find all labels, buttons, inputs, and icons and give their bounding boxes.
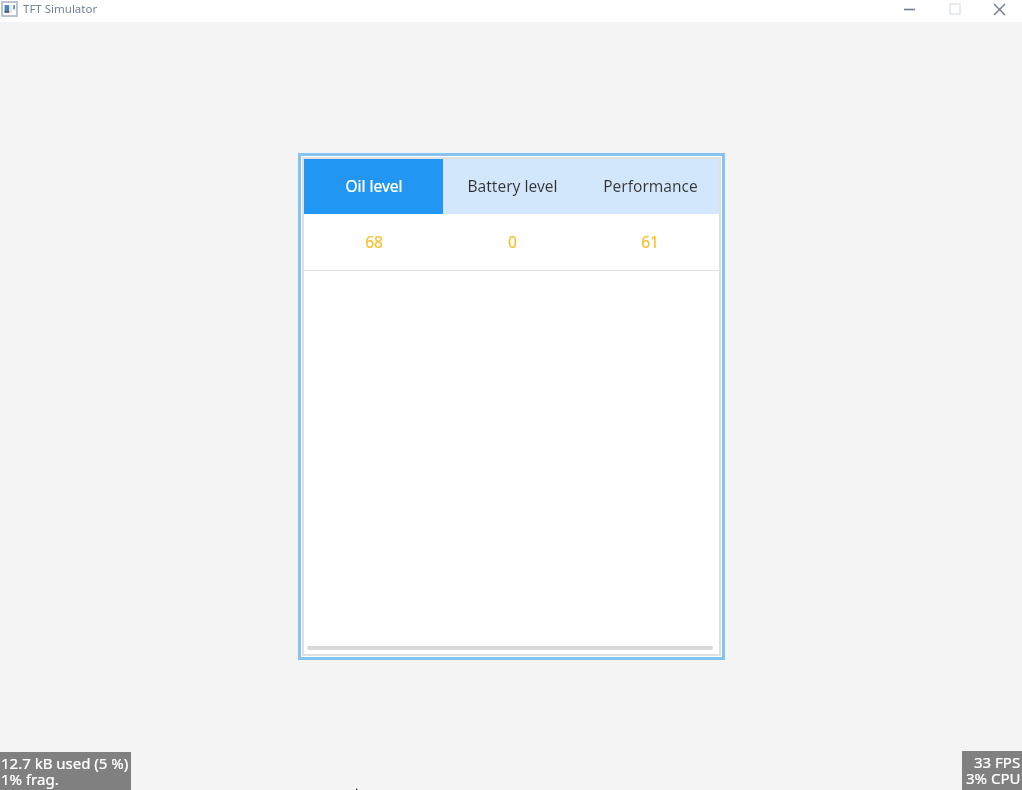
- staticText: Battery level: [467, 175, 558, 196]
- button[interactable]: Maximize: [932, 0, 977, 20]
- staticText: 68: [365, 231, 383, 252]
- button[interactable]: Close: [977, 0, 1022, 20]
- staticText: TFT Simulator: [23, 1, 98, 17]
- staticText: 3% CPU: [966, 768, 1021, 788]
- staticText: Performance: [603, 175, 698, 196]
- staticText: 12.7 kB used (5 %): [1, 753, 129, 773]
- button[interactable]: Minimize: [887, 0, 932, 20]
- button[interactable]: Oil level: [304, 159, 443, 214]
- staticText: 0: [508, 231, 517, 252]
- staticText: Oil level: [345, 175, 403, 196]
- staticText: 1% frag.: [1, 769, 59, 789]
- button[interactable]: Battery level: [443, 159, 581, 214]
- button[interactable]: Performance: [581, 159, 719, 214]
- staticText: 61: [641, 231, 659, 252]
- staticText: 33 FPS: [974, 752, 1021, 772]
